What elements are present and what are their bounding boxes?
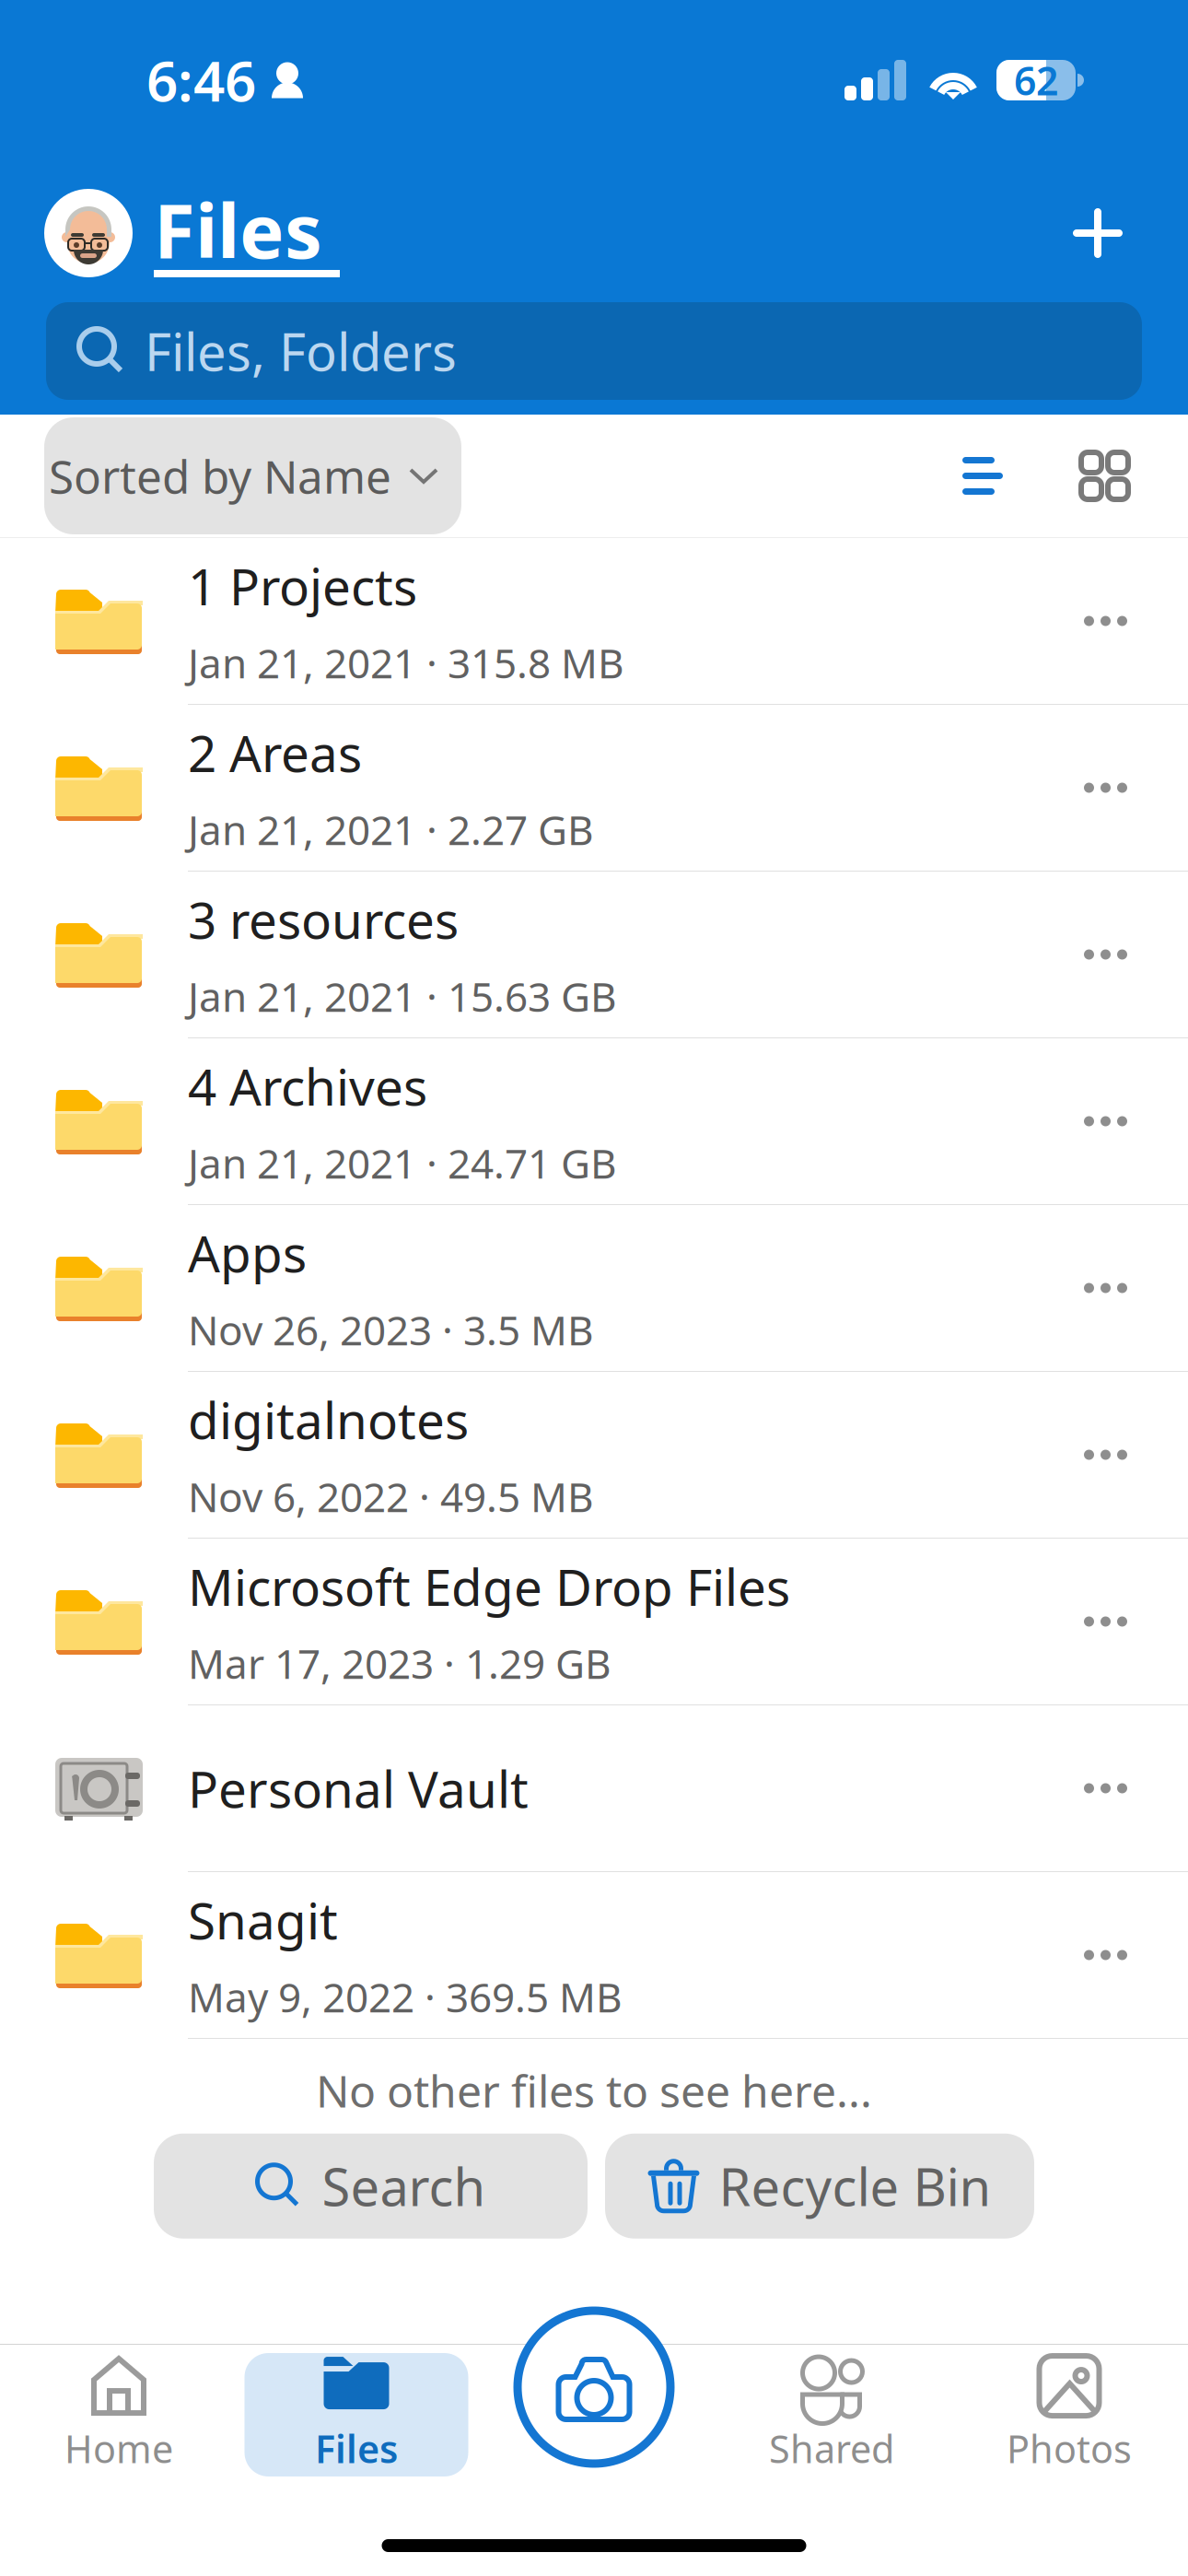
staticText: 3 resources <box>188 886 459 953</box>
button[interactable]: List view <box>962 457 1003 495</box>
staticText: Jan 21, 2021 · 15.63 GB <box>188 969 617 1023</box>
staticText: Apps <box>188 1219 307 1286</box>
staticText: Files, Folders <box>145 317 457 385</box>
staticText: Nov 6, 2022 · 49.5 MB <box>188 1470 594 1523</box>
button[interactable]: 2 Areas <box>0 705 1188 872</box>
button[interactable]: Sorted by Name <box>44 417 461 534</box>
staticText: Photos <box>1007 2423 1132 2474</box>
staticText: Home <box>64 2423 173 2474</box>
button[interactable]: Photos <box>950 2353 1188 2476</box>
button[interactable]: Personal Vault <box>0 1705 1188 1872</box>
staticText: Jan 21, 2021 · 2.27 GB <box>188 803 594 856</box>
button[interactable]: 3 resources <box>0 872 1188 1038</box>
staticText: Sorted by Name <box>49 446 391 506</box>
button[interactable]: Shared <box>713 2353 950 2476</box>
button[interactable]: Home <box>0 2353 238 2476</box>
staticText: Mar 17, 2023 · 1.29 GB <box>188 1636 611 1690</box>
staticText: 4 Archives <box>188 1053 427 1119</box>
staticText: Jan 21, 2021 · 315.8 MB <box>188 636 624 690</box>
staticText: digitalnotes <box>188 1386 469 1453</box>
staticText: Snagit <box>188 1886 338 1953</box>
button[interactable]: Snagit <box>0 1872 1188 2039</box>
button[interactable]: Camera <box>482 2311 706 2464</box>
staticText: No other files to see here... <box>316 2061 872 2120</box>
button[interactable]: digitalnotes <box>0 1372 1188 1539</box>
button[interactable]: Recycle Bin <box>605 2133 1034 2239</box>
button[interactable]: Account <box>44 189 133 277</box>
staticText: May 9, 2022 · 369.5 MB <box>188 1970 623 2024</box>
button[interactable]: Grid view <box>1003 452 1128 499</box>
staticText: Files <box>154 180 322 279</box>
staticText: 2 Areas <box>188 719 362 786</box>
staticText: Nov 26, 2023 · 3.5 MB <box>188 1303 594 1357</box>
staticText: Search <box>322 2152 486 2220</box>
staticText: Files <box>315 2423 398 2474</box>
button[interactable]: 1 Projects <box>0 538 1188 705</box>
button[interactable]: Apps <box>0 1205 1188 1372</box>
staticText: 62 <box>1014 54 1058 106</box>
staticText: Microsoft Edge Drop Files <box>188 1553 790 1620</box>
button[interactable]: 4 Archives <box>0 1038 1188 1205</box>
button[interactable]: Search <box>154 2133 588 2239</box>
staticText: Personal Vault <box>188 1755 529 1822</box>
staticText: Recycle Bin <box>719 2152 991 2220</box>
button[interactable]: Add <box>1057 193 1138 274</box>
staticText: Jan 21, 2021 · 24.71 GB <box>188 1136 617 1190</box>
staticText: 6:46 <box>146 43 256 117</box>
staticText: 1 Projects <box>188 552 417 619</box>
button[interactable]: Files <box>238 2353 475 2476</box>
staticText: Shared <box>769 2423 894 2474</box>
button[interactable]: Microsoft Edge Drop Files <box>0 1539 1188 1705</box>
button[interactable]: Files, Folders <box>46 302 1142 400</box>
